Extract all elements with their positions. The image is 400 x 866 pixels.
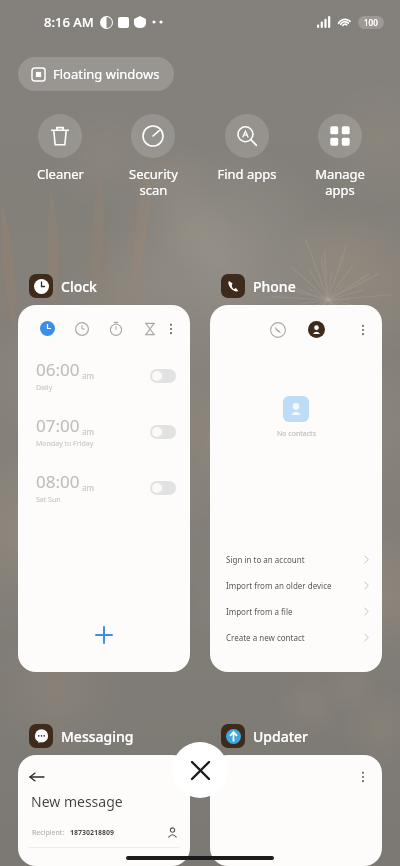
button[interactable]: Updater bbox=[219, 722, 311, 750]
button[interactable]: Import from a file bbox=[210, 598, 382, 624]
staticText: Floating windows bbox=[53, 65, 160, 83]
staticText: Cleaner bbox=[37, 165, 84, 183]
button[interactable]: Security scan bbox=[110, 110, 196, 202]
staticText: Import from a file bbox=[226, 606, 293, 617]
staticText: Monday to Friday bbox=[36, 439, 94, 449]
button[interactable]: Dialer bbox=[270, 322, 286, 338]
button[interactable]: Manage apps bbox=[297, 110, 383, 202]
button[interactable] bbox=[150, 369, 176, 383]
button[interactable]: Alarm bbox=[40, 321, 55, 336]
button[interactable]: Back bbox=[18, 755, 190, 866]
button[interactable]: Clock bbox=[75, 322, 89, 336]
button[interactable]: Phone bbox=[219, 272, 298, 300]
button[interactable]: 07:00 bbox=[18, 414, 190, 449]
button[interactable]: Add alarm bbox=[87, 618, 121, 652]
button[interactable]: More options bbox=[164, 322, 178, 336]
button[interactable]: More options bbox=[356, 323, 370, 337]
staticText: Manage apps bbox=[315, 165, 365, 198]
staticText: Recipient: bbox=[32, 828, 65, 838]
button[interactable]: Stopwatch bbox=[109, 322, 123, 336]
staticText: Security scan bbox=[129, 165, 178, 198]
staticText: Messaging bbox=[61, 727, 134, 746]
button[interactable]: Clock bbox=[27, 272, 99, 300]
button[interactable]: More options bbox=[210, 755, 382, 866]
staticText: Create a new contact bbox=[226, 632, 305, 643]
staticText: am bbox=[80, 482, 95, 493]
staticText: Clock bbox=[61, 277, 97, 296]
button[interactable]: 08:00 bbox=[18, 470, 190, 505]
staticText: 07:00 bbox=[36, 414, 80, 437]
button[interactable]: 06:00 bbox=[18, 358, 190, 393]
staticText: Daily bbox=[36, 383, 53, 393]
button[interactable] bbox=[150, 481, 176, 495]
staticText: 18730218809 bbox=[70, 828, 115, 838]
staticText: 06:00 bbox=[36, 358, 80, 381]
button[interactable] bbox=[150, 425, 176, 439]
button[interactable]: More options bbox=[356, 770, 370, 784]
staticText: Phone bbox=[253, 277, 296, 296]
staticText: No contacts bbox=[277, 429, 316, 439]
staticText: 8:16 AM bbox=[44, 13, 94, 31]
button[interactable]: Find apps bbox=[204, 110, 290, 187]
staticText: Import from an older device bbox=[226, 580, 332, 591]
staticText: New message bbox=[31, 792, 123, 811]
staticText: am bbox=[80, 426, 95, 437]
button[interactable]: Create a new contact bbox=[210, 624, 382, 650]
button[interactable]: Cleaner bbox=[17, 110, 103, 187]
button[interactable]: Import from an older device bbox=[210, 572, 382, 598]
button[interactable]: Contacts bbox=[308, 321, 325, 338]
staticText: Sign in to an account bbox=[226, 554, 305, 565]
button[interactable]: Dialer bbox=[210, 305, 382, 672]
button[interactable]: Close all bbox=[172, 742, 228, 798]
staticText: Updater bbox=[253, 727, 309, 746]
staticText: Sat Sun bbox=[36, 495, 61, 505]
staticText: 100 bbox=[364, 17, 378, 28]
staticText: am bbox=[80, 370, 95, 381]
button[interactable]: Timer bbox=[143, 322, 157, 336]
button[interactable]: Back bbox=[30, 770, 44, 784]
button[interactable]: Sign in to an account bbox=[210, 546, 382, 572]
button[interactable]: Alarm bbox=[18, 305, 190, 672]
staticText: 08:00 bbox=[36, 470, 80, 493]
staticText: Find apps bbox=[217, 165, 277, 183]
button[interactable]: Floating windows bbox=[18, 57, 174, 91]
button[interactable]: Messaging bbox=[27, 722, 136, 750]
